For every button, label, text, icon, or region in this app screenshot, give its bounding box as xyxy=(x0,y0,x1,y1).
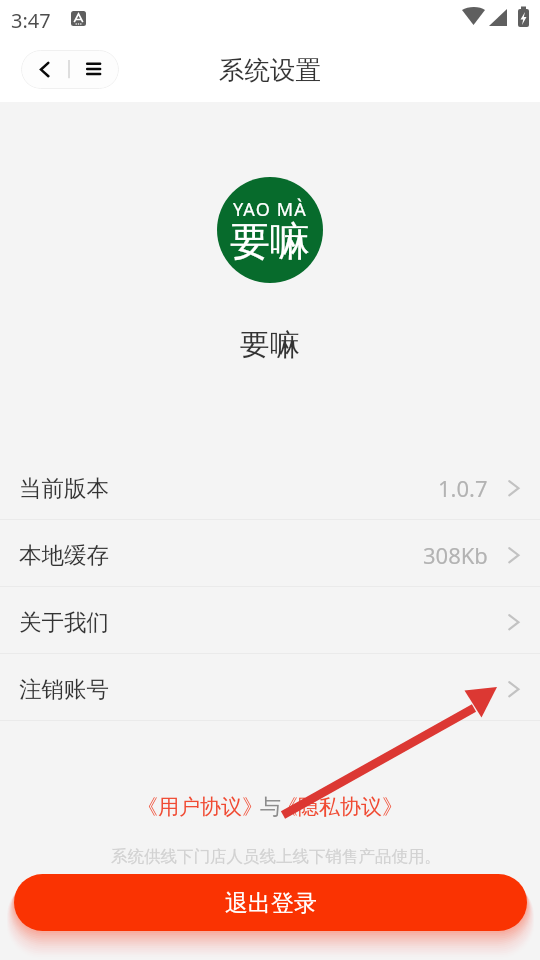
button[interactable]: 当前版本 xyxy=(0,453,540,519)
button[interactable]: 关于我们 xyxy=(0,587,540,653)
staticText: 3:47 xyxy=(11,7,51,34)
staticText: 308Kb xyxy=(423,540,488,570)
button[interactable]: Back and menu xyxy=(21,50,119,89)
button[interactable]: 《用户协议》 xyxy=(137,794,263,820)
button[interactable]: 《隐私协议》 xyxy=(277,794,403,820)
button[interactable]: 注销账号 xyxy=(0,654,540,720)
staticText: 要嘛 xyxy=(240,326,300,364)
staticText: 系统设置 xyxy=(219,54,321,86)
staticText: 本地缓存 xyxy=(19,541,109,569)
staticText: 1.0.7 xyxy=(438,473,488,503)
staticText: 当前版本 xyxy=(19,474,109,502)
staticText: YAO MÀ xyxy=(233,197,308,222)
staticText: 退出登录 xyxy=(225,889,317,918)
button[interactable]: 本地缓存 xyxy=(0,520,540,586)
staticText: 注销账号 xyxy=(19,675,109,703)
staticText: 要嘛 xyxy=(230,216,310,266)
staticText: 与 xyxy=(260,794,274,820)
button[interactable]: 退出登录 xyxy=(14,874,527,931)
staticText: 关于我们 xyxy=(19,608,109,636)
staticText: 系统供线下门店人员线上线下销售产品使用。 xyxy=(111,846,441,867)
